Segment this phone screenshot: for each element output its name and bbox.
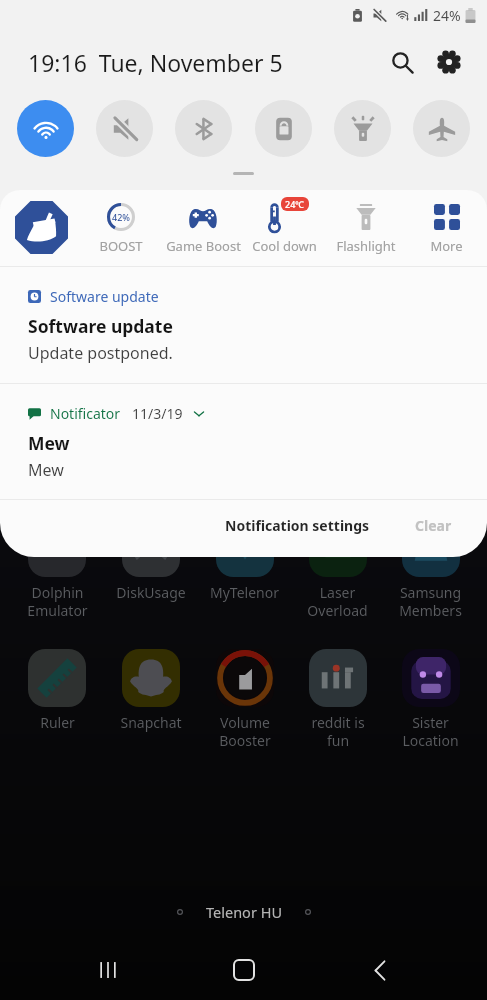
button[interactable]: Game Boost xyxy=(162,190,244,255)
staticText: Dolphin Emulator xyxy=(27,583,88,620)
button[interactable]: 42% xyxy=(80,190,162,255)
staticText: Mew xyxy=(28,431,70,455)
staticText: Samsung Members xyxy=(399,583,462,620)
button[interactable]: Notification settings xyxy=(219,508,376,543)
button[interactable]: MyTelenor xyxy=(198,519,291,602)
button[interactable]: Recents xyxy=(82,944,134,996)
staticText: Telenor HU xyxy=(206,902,282,922)
button[interactable]: Laser Overload xyxy=(291,519,384,620)
button[interactable]: Flashlight xyxy=(334,100,391,157)
button[interactable]: Software update xyxy=(0,267,487,383)
button[interactable]: Search xyxy=(384,44,420,80)
staticText: 19:16 Tue, November 5 xyxy=(28,47,283,78)
staticText: Snapchat xyxy=(120,713,182,732)
button[interactable]: reddit is fun xyxy=(291,649,384,750)
staticText: More xyxy=(430,237,463,255)
button[interactable]: More xyxy=(406,190,487,255)
button[interactable]: Sound xyxy=(96,100,153,157)
staticText: Cool down xyxy=(252,237,317,255)
button[interactable]: Back xyxy=(354,944,406,996)
staticText: reddit is fun xyxy=(311,713,365,750)
button[interactable]: Auto rotate xyxy=(255,100,312,157)
button[interactable]: DiskUsage xyxy=(104,519,198,602)
staticText: Software update xyxy=(28,314,173,338)
staticText: DiskUsage xyxy=(116,583,186,602)
staticText: Flashlight xyxy=(336,237,396,255)
staticText: 42% xyxy=(112,211,130,223)
staticText: Software update xyxy=(50,287,159,306)
button[interactable]: Notificator xyxy=(0,384,487,499)
staticText: BOOST xyxy=(99,237,143,255)
button[interactable]: Sister Location xyxy=(384,649,477,750)
staticText: Update postponed. xyxy=(28,342,173,364)
staticText: MyTelenor xyxy=(210,583,279,602)
staticText: Mew xyxy=(28,459,64,481)
button[interactable]: Snapchat xyxy=(104,649,198,732)
button[interactable]: Clear xyxy=(409,508,458,543)
staticText: Notification settings xyxy=(225,516,370,535)
button[interactable]: Dolphin Emulator xyxy=(10,519,104,620)
button[interactable]: Phone clean xyxy=(15,201,68,254)
button[interactable]: Ruler xyxy=(10,649,104,732)
button[interactable]: 24℃ xyxy=(244,190,325,255)
button[interactable]: Volume Booster xyxy=(198,649,291,750)
button[interactable]: Airplane mode xyxy=(413,100,470,157)
staticText: 24% xyxy=(433,6,461,25)
button[interactable]: Flashlight xyxy=(325,190,406,255)
button[interactable]: Wi-Fi xyxy=(17,100,74,157)
staticText: Game Boost xyxy=(166,237,241,255)
button[interactable]: Bluetooth xyxy=(175,100,232,157)
staticText: 11/3/19 xyxy=(132,404,183,423)
staticText: Clear xyxy=(415,516,452,535)
button[interactable]: Settings xyxy=(431,44,467,80)
staticText: Sister Location xyxy=(402,713,459,750)
staticText: Laser Overload xyxy=(307,583,368,620)
button[interactable]: Samsung Members xyxy=(384,519,477,620)
staticText: Ruler xyxy=(40,713,75,732)
staticText: 24℃ xyxy=(285,198,305,210)
staticText: Notificator xyxy=(50,404,121,423)
staticText: Volume Booster xyxy=(219,713,271,750)
button[interactable]: Home xyxy=(218,944,270,996)
